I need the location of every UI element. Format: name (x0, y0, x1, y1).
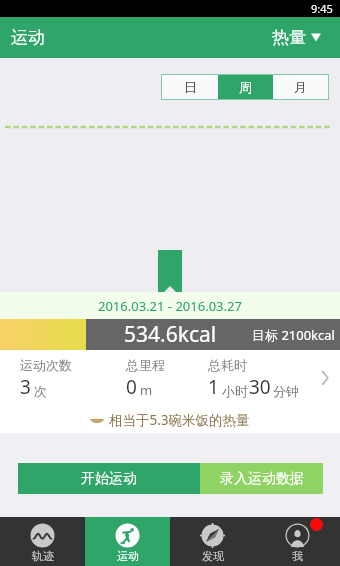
button[interactable]: 录入运动数据 (200, 463, 323, 494)
staticText: 1 (208, 374, 219, 400)
button[interactable]: 热量 (260, 27, 340, 48)
button[interactable]: 开始运动 (18, 463, 200, 494)
staticText: 运动次数 (20, 357, 72, 373)
staticText: 534.6kcal (124, 320, 217, 349)
staticText: 30 (249, 374, 271, 400)
staticText: 发现 (202, 549, 224, 563)
staticText: 运动 (117, 549, 139, 563)
staticText: 日 (184, 79, 197, 95)
staticText: 2016.03.21 - 2016.03.27 (98, 297, 242, 315)
staticText: 周 (239, 79, 252, 95)
staticText: 分钟 (273, 383, 299, 399)
button[interactable]: 发现 (170, 517, 255, 566)
button[interactable]: 运动 (85, 517, 170, 566)
staticText: 录入运动数据 (220, 470, 304, 488)
staticText: 我 (292, 549, 303, 563)
staticText: 热量 (272, 27, 306, 48)
staticText: 相当于5.3碗米饭的热量 (109, 411, 250, 429)
staticText: 3 (20, 374, 31, 400)
staticText: m (140, 381, 153, 399)
staticText: 次 (34, 383, 47, 399)
button[interactable]: 周 (218, 75, 273, 99)
button[interactable]: 运动次数 (0, 350, 340, 406)
button[interactable]: 月 (273, 75, 328, 99)
staticText: 总里程 (126, 357, 165, 373)
staticText: 9:45 (311, 1, 333, 16)
staticText: 开始运动 (81, 470, 137, 488)
staticText: 总耗时 (208, 357, 247, 373)
staticText: 目标 2100kcal (252, 326, 335, 344)
staticText: 月 (294, 79, 307, 95)
staticText: 轨迹 (32, 549, 54, 563)
button[interactable]: 日 (162, 75, 218, 99)
button[interactable]: 我 (255, 517, 340, 566)
staticText: 小时 (222, 383, 248, 399)
staticText: 运动 (11, 27, 45, 48)
button[interactable]: 轨迹 (0, 517, 85, 566)
staticText: 0 (126, 374, 137, 400)
